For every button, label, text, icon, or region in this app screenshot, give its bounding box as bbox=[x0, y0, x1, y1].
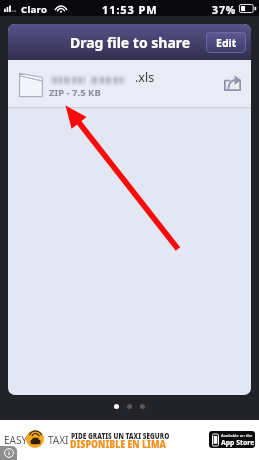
staticText: PIDE GRATIS UN TAXI SEGURO bbox=[71, 430, 170, 441]
staticText: .xls bbox=[135, 69, 155, 86]
button[interactable] bbox=[114, 404, 119, 409]
staticText: 37% bbox=[212, 3, 237, 17]
staticText: EASY bbox=[4, 433, 28, 447]
button[interactable]: .xls bbox=[8, 60, 251, 108]
staticText: 11:53 PM bbox=[102, 2, 158, 17]
button[interactable]: EASY bbox=[0, 420, 259, 460]
staticText: ZIP - 7.5 KB bbox=[49, 86, 101, 99]
button[interactable]: Edit bbox=[206, 32, 246, 53]
button[interactable]: Share bbox=[219, 71, 245, 95]
staticText: Drag file to share bbox=[70, 33, 191, 52]
button[interactable]: Available on the App Store bbox=[209, 431, 255, 448]
staticText: DISPONIBLE EN LIMA bbox=[70, 437, 167, 451]
staticText: TAXI bbox=[48, 433, 69, 447]
staticText: Claro bbox=[21, 3, 48, 16]
button[interactable]: Ad info bbox=[0, 446, 17, 460]
staticText: Available on the bbox=[221, 433, 253, 439]
staticText: App Store bbox=[221, 437, 254, 448]
button[interactable] bbox=[140, 404, 145, 409]
staticText: Edit bbox=[216, 36, 237, 50]
button[interactable] bbox=[127, 404, 132, 409]
